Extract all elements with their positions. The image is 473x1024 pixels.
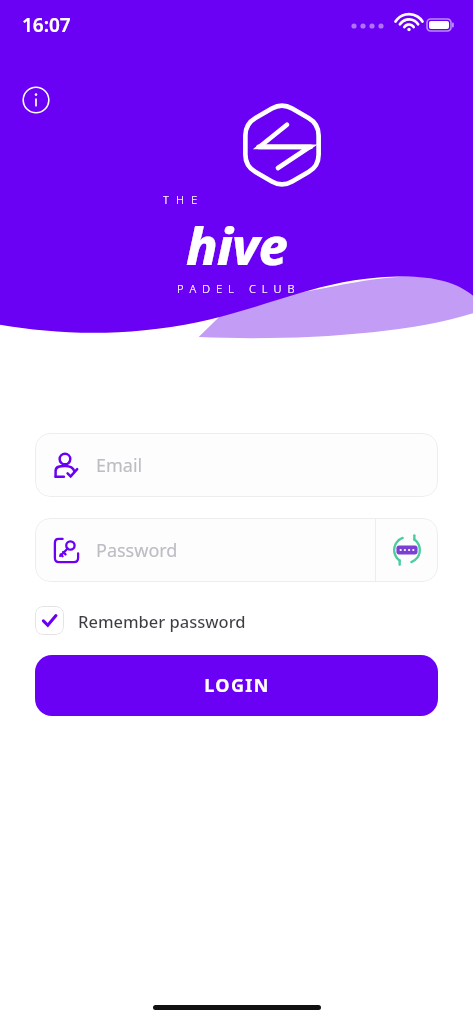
button[interactable]: Email [35,433,438,497]
button[interactable]: LOGIN [35,655,438,716]
button[interactable]: Information [22,86,50,114]
staticText: T H E [163,192,200,207]
button[interactable]: Remember password [35,606,246,635]
button[interactable]: Password [35,518,375,582]
staticText: hive [186,209,287,280]
staticText: P A D E L C L U B [177,281,297,296]
staticText: 16:07 [22,12,71,38]
staticText: Remember password [78,610,246,632]
staticText: LOGIN [204,673,270,698]
staticText: Email [96,453,143,478]
staticText: Password [96,538,178,563]
button[interactable]: Generate password [376,518,438,582]
